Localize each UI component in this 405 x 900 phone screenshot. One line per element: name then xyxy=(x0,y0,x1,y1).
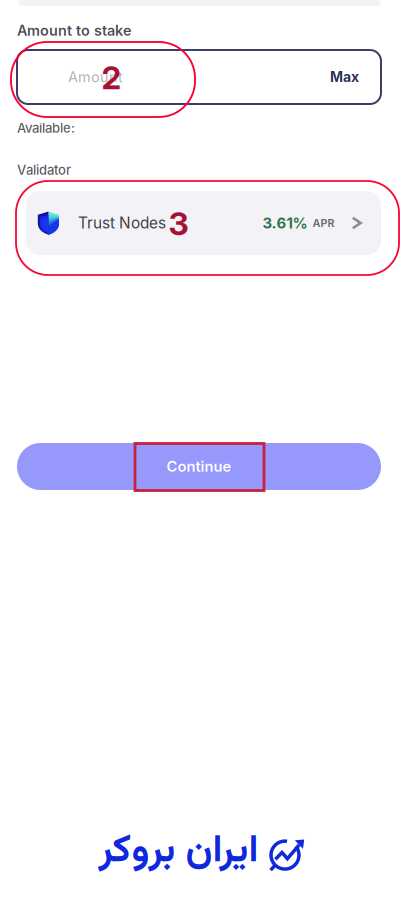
staticText: Continue xyxy=(166,458,231,475)
staticText: Amount to stake xyxy=(17,22,132,39)
staticText: APR xyxy=(312,216,334,229)
button[interactable]: Continue xyxy=(17,443,381,490)
staticText: Validator xyxy=(17,162,71,178)
staticText: Max xyxy=(330,68,359,85)
staticText: ایران بروکر xyxy=(98,822,258,882)
button[interactable]: Trust Nodes xyxy=(26,191,381,255)
staticText: Trust Nodes xyxy=(78,214,166,232)
staticText: Amount xyxy=(68,68,123,86)
staticText: 3.61% xyxy=(262,214,307,232)
staticText: Available: xyxy=(17,120,75,136)
button[interactable]: Amount xyxy=(17,50,330,104)
staticText: 3 xyxy=(168,204,188,243)
staticText: 2 xyxy=(101,58,121,97)
button[interactable]: Max xyxy=(330,50,381,104)
